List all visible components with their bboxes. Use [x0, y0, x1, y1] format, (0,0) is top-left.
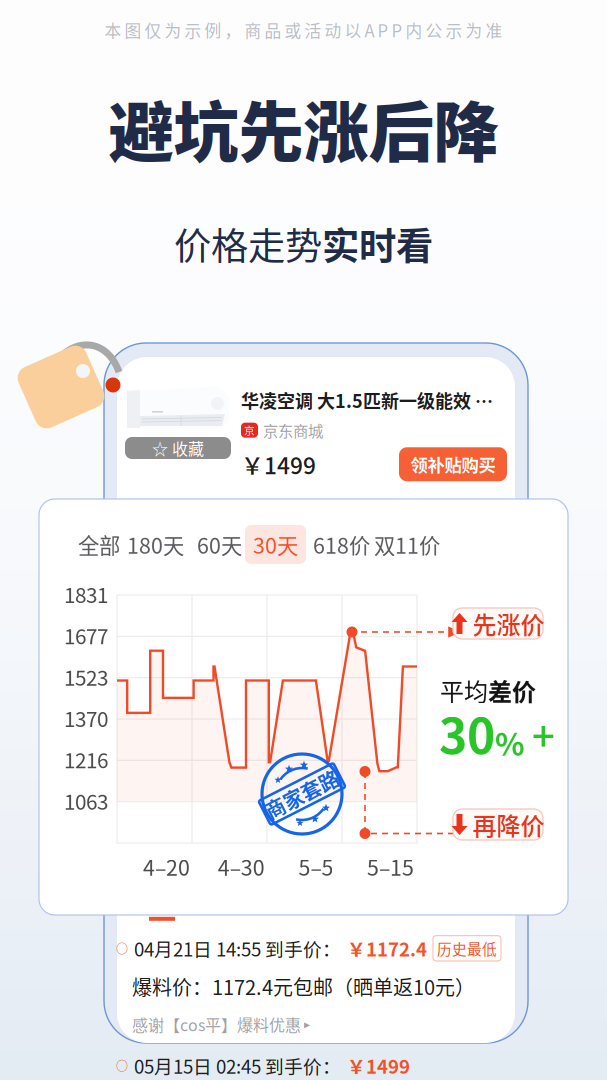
staticText: 4–20: [143, 851, 190, 882]
staticText: 1677: [64, 620, 108, 650]
staticText: 价格走势: [174, 217, 322, 271]
staticText: 历史最低: [437, 938, 497, 959]
button[interactable]: 我要爆料: [431, 885, 516, 916]
staticText: 1216: [64, 744, 108, 774]
staticText: 京: [244, 422, 255, 438]
staticText: ￥1499: [347, 1052, 410, 1079]
button[interactable]: ☆: [125, 437, 231, 459]
button[interactable]: 618价: [305, 525, 378, 564]
staticText: 5–5: [298, 851, 333, 882]
staticText: 京东商城: [263, 419, 323, 441]
staticText: 感谢【cos平】爆料优惠: [132, 1013, 301, 1036]
button[interactable]: 领补贴购买: [399, 447, 507, 481]
staticText: 60天: [197, 529, 242, 560]
staticText: 收藏: [172, 436, 204, 460]
staticText: ○: [116, 1057, 128, 1074]
button[interactable]: 双11价: [366, 525, 448, 564]
staticText: 爆料价：1172.4元包邮（晒单返10元）: [132, 972, 475, 1001]
staticText: ▸: [304, 1017, 310, 1031]
staticText: 差价: [488, 673, 536, 708]
staticText: 1063: [64, 786, 108, 816]
staticText: ›: [510, 885, 516, 916]
staticText: %: [495, 720, 525, 764]
staticText: 避坑先涨后降: [108, 80, 498, 175]
button[interactable]: 60天: [189, 525, 250, 564]
staticText: 慢友到手价: [226, 886, 326, 915]
staticText: 1523: [64, 662, 108, 692]
staticText: 4–30: [218, 851, 265, 882]
staticText: 04月21日 14:55 到手价：: [134, 935, 341, 962]
staticText: 再降价: [472, 807, 544, 842]
staticText: 华凌空调 大1.5匹新一级能效 超省电·: [241, 387, 507, 413]
staticText: 本图仅为示例，商品或活动以APP内公示为准: [104, 18, 502, 42]
staticText: 180天: [127, 529, 184, 560]
staticText: 618价: [313, 529, 370, 560]
staticText: 30: [439, 698, 495, 767]
staticText: 领补贴购买: [410, 452, 495, 477]
staticText: 实时看: [322, 217, 433, 271]
staticText: ○: [116, 940, 128, 957]
staticText: ☆: [152, 436, 168, 460]
staticText: 全部: [78, 529, 120, 560]
staticText: ￥1499: [241, 448, 316, 481]
staticText: 先涨价: [472, 606, 544, 641]
staticText: +: [532, 705, 555, 762]
staticText: 1831: [64, 579, 108, 609]
button[interactable]: 全部: [70, 525, 128, 564]
staticText: 05月15日 02:45 到手价：: [134, 1052, 341, 1079]
staticText: 1370: [64, 703, 108, 733]
button[interactable]: 30天: [245, 525, 306, 564]
staticText: 平均: [440, 673, 488, 708]
button[interactable]: 180天: [119, 525, 192, 564]
staticText: 双11价: [374, 529, 440, 560]
staticText: 30天: [253, 529, 298, 560]
staticText: 5–15: [367, 851, 414, 882]
staticText: 商家套路: [262, 779, 342, 808]
staticText: ￥1172.4: [347, 935, 427, 962]
